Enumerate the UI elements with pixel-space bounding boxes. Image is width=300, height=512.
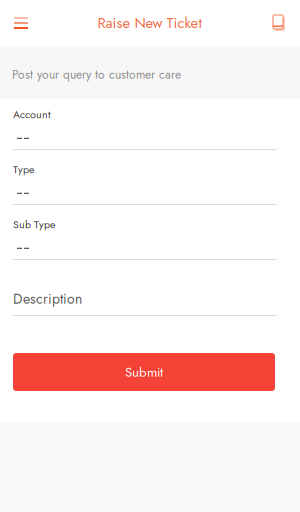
- button[interactable]: Description: [13, 292, 277, 316]
- staticText: Type: [13, 162, 34, 177]
- button[interactable]: Submit: [13, 353, 277, 391]
- staticText: Account: [13, 107, 51, 122]
- button[interactable]: Account: [13, 109, 277, 150]
- button[interactable]: My tickets: [258, 0, 300, 46]
- staticText: Submit: [125, 362, 163, 382]
- button[interactable]: Type: [13, 164, 277, 205]
- staticText: Post your query to customer care: [12, 66, 181, 83]
- staticText: Sub Type: [13, 217, 55, 232]
- staticText: Description: [13, 289, 82, 309]
- button[interactable]: Sub Type: [13, 219, 277, 260]
- staticText: Raise New Ticket: [97, 12, 202, 34]
- button[interactable]: Menu: [0, 0, 42, 46]
